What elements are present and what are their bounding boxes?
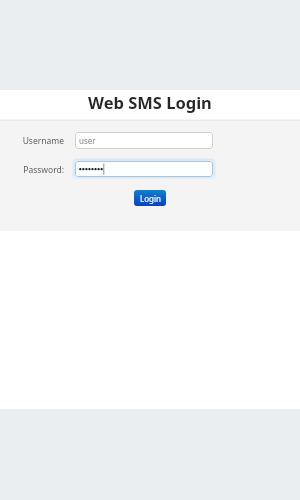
staticText: user [79, 135, 96, 146]
staticText: Username [22, 135, 64, 147]
staticText: Login [140, 193, 161, 204]
staticText: Web SMS Login [88, 91, 212, 113]
button[interactable]: Login [134, 190, 166, 206]
button[interactable]: Password input field [75, 161, 213, 177]
button[interactable]: user [75, 132, 213, 149]
staticText: Password: [23, 164, 64, 176]
